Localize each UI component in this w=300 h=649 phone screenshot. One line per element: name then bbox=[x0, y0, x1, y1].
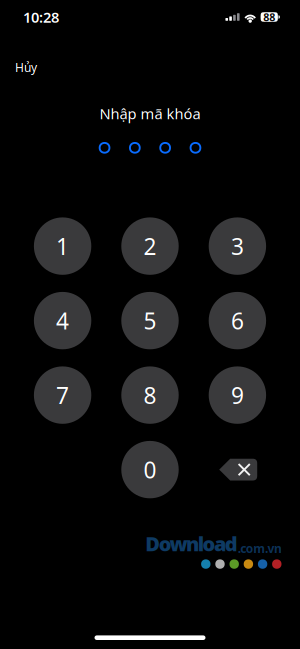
staticText: 8 bbox=[143, 380, 156, 410]
staticText: Hủy bbox=[15, 59, 37, 75]
staticText: 0 bbox=[143, 455, 156, 485]
staticText: 9 bbox=[231, 380, 244, 410]
staticText: 88 bbox=[263, 10, 275, 24]
staticText: Nhập mã khóa bbox=[99, 104, 200, 123]
staticText: 6 bbox=[231, 306, 244, 336]
button[interactable]: 4 bbox=[34, 292, 91, 349]
button[interactable]: 8 bbox=[121, 366, 179, 424]
button[interactable]: 7 bbox=[34, 366, 91, 424]
button[interactable]: Hủy bbox=[10, 55, 42, 79]
staticText: 10:28 bbox=[23, 7, 59, 27]
staticText: Download bbox=[145, 530, 238, 557]
button[interactable]: 3 bbox=[209, 217, 266, 275]
button[interactable]: 9 bbox=[209, 366, 266, 424]
button[interactable]: 0 bbox=[121, 441, 179, 498]
button[interactable]: 5 bbox=[121, 292, 179, 349]
staticText: .com.vn bbox=[238, 540, 282, 556]
staticText: 7 bbox=[56, 380, 69, 410]
staticText: 5 bbox=[143, 306, 156, 336]
staticText: 1 bbox=[56, 231, 69, 261]
button[interactable]: 6 bbox=[209, 292, 266, 349]
button[interactable]: Delete bbox=[209, 441, 266, 498]
staticText: 4 bbox=[56, 306, 69, 336]
staticText: 3 bbox=[231, 231, 244, 261]
button[interactable]: 1 bbox=[34, 217, 91, 275]
button[interactable]: 2 bbox=[121, 217, 179, 275]
staticText: 2 bbox=[143, 231, 156, 261]
